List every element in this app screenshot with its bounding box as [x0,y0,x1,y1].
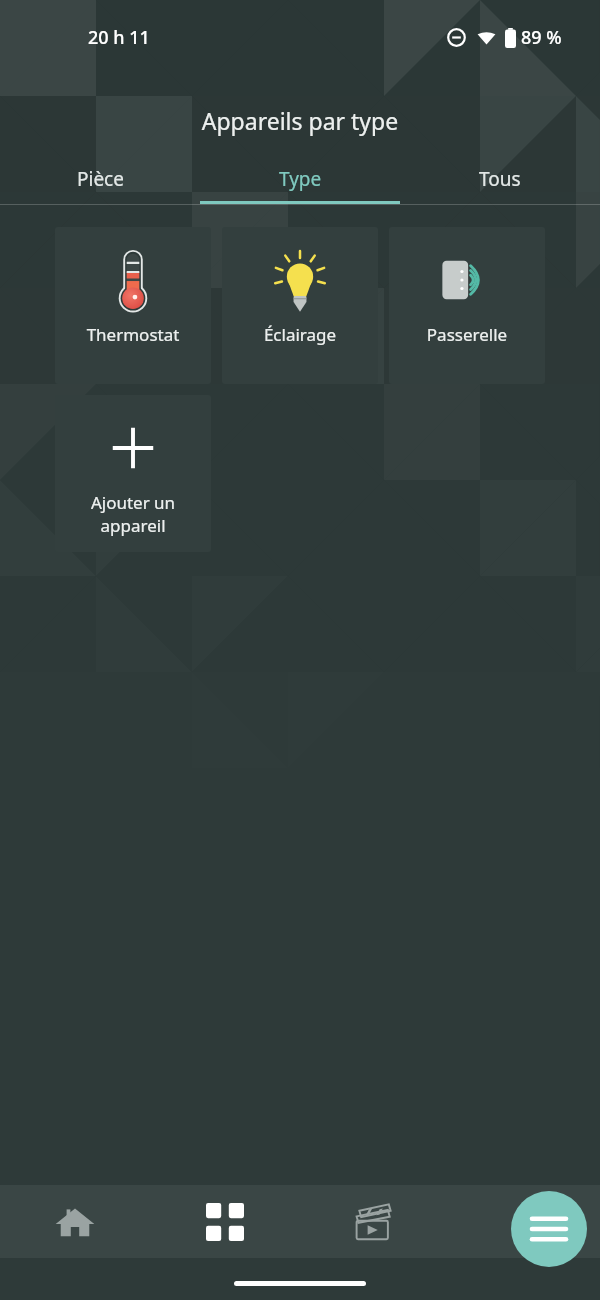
staticText: Passerelle [389,323,545,346]
button[interactable]: Passerelle [389,227,545,384]
staticText: 89 % [521,25,562,50]
button[interactable]: Accueil [0,1185,150,1258]
button[interactable]: Menu [511,1191,587,1267]
staticText: Tous [479,166,521,192]
button[interactable]: Appareils [150,1185,300,1258]
button[interactable]: Scènes [300,1185,450,1258]
button[interactable]: Thermostat [55,227,211,384]
staticText: Éclairage [222,323,378,346]
staticText: Appareils par type [0,105,600,136]
button[interactable]: Éclairage [222,227,378,384]
button[interactable]: Tous [400,163,600,204]
staticText: Type [279,166,322,192]
staticText: 20 h 11 [88,25,150,50]
button[interactable]: Ajouter un appareil [55,395,211,552]
button[interactable]: Type [200,163,400,204]
staticText: Thermostat [55,323,211,346]
staticText: Pièce [77,166,124,192]
button[interactable]: Pièce [0,163,200,204]
staticText: Ajouter un appareil [55,491,211,537]
